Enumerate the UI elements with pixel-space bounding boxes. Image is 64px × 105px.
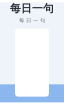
- staticText: 每日一句: [10, 2, 54, 15]
- staticText: 每 日 一 句: [19, 17, 45, 24]
